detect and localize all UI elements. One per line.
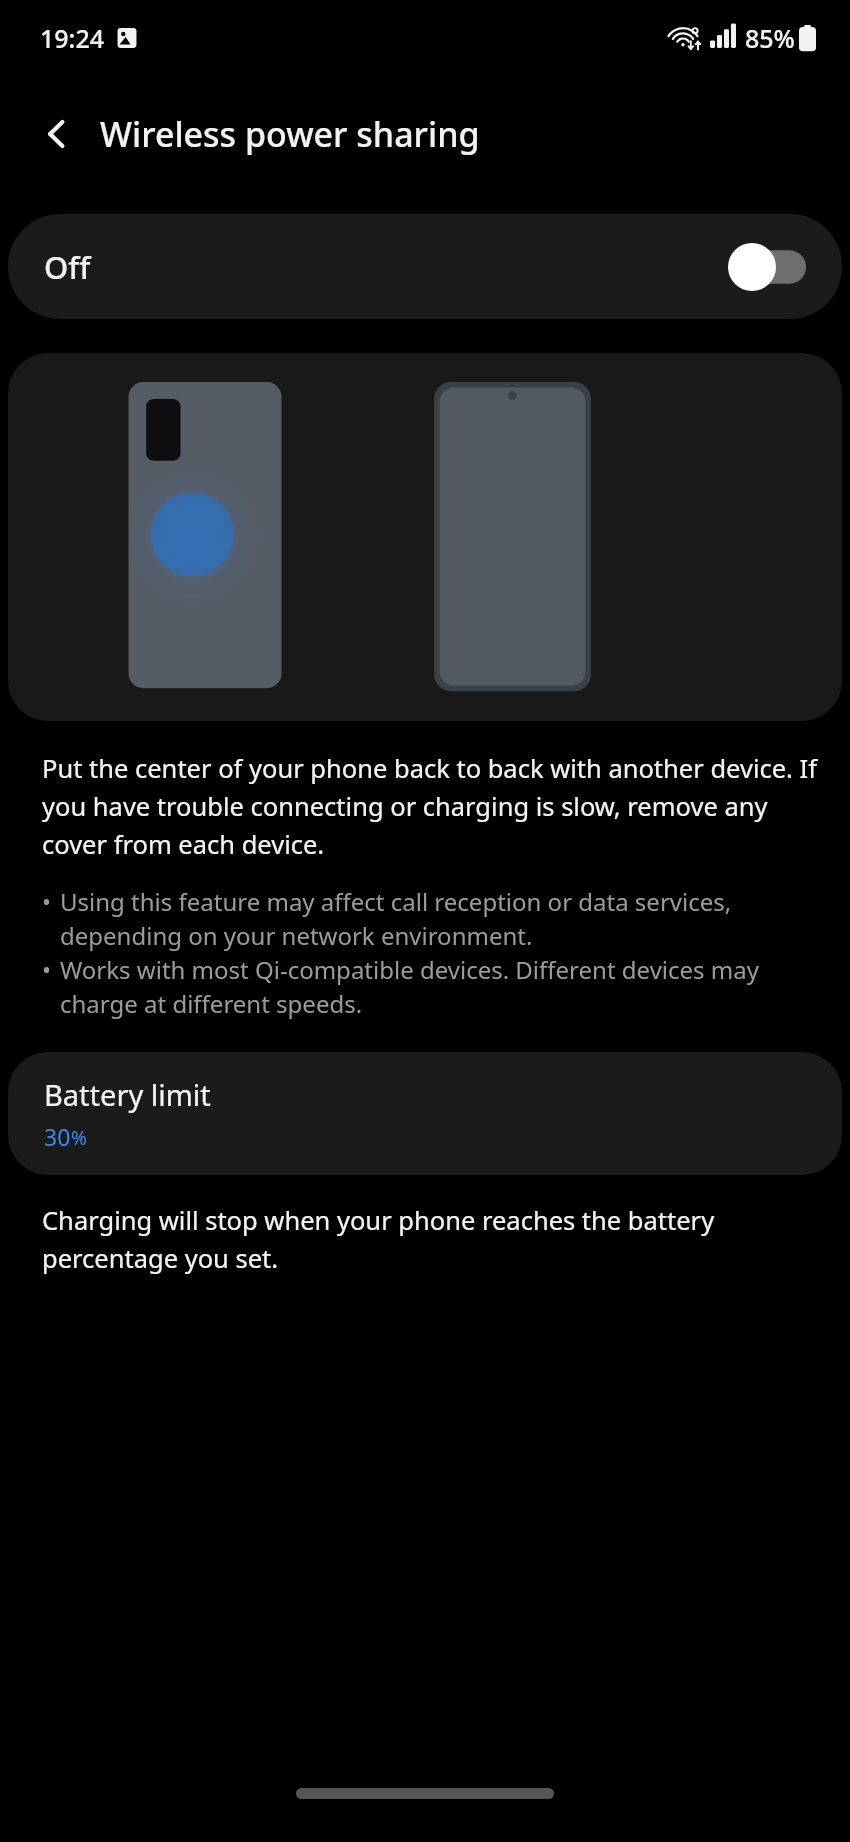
staticText: 19:24 <box>40 21 105 55</box>
button[interactable]: Back <box>26 103 88 165</box>
staticText: • <box>42 953 52 986</box>
staticText: Put the center of your phone back to bac… <box>42 751 818 861</box>
staticText: • <box>42 885 52 918</box>
staticText: Charging will stop when your phone reach… <box>42 1203 810 1275</box>
button[interactable]: Battery limit <box>8 1052 842 1175</box>
staticText: 85% <box>745 21 795 55</box>
staticText: Using this feature may affect call recep… <box>60 885 824 953</box>
staticText: 30 <box>44 1121 71 1152</box>
staticText: Off <box>44 246 91 288</box>
staticText: Works with most Qi-compatible devices. D… <box>60 953 824 1021</box>
staticText: % <box>71 1125 87 1151</box>
staticText: Battery limit <box>44 1075 211 1114</box>
staticText: Wireless power sharing <box>100 111 480 157</box>
button[interactable]: Off <box>8 214 842 319</box>
button[interactable]: Wireless power sharing toggle, off <box>728 243 806 291</box>
